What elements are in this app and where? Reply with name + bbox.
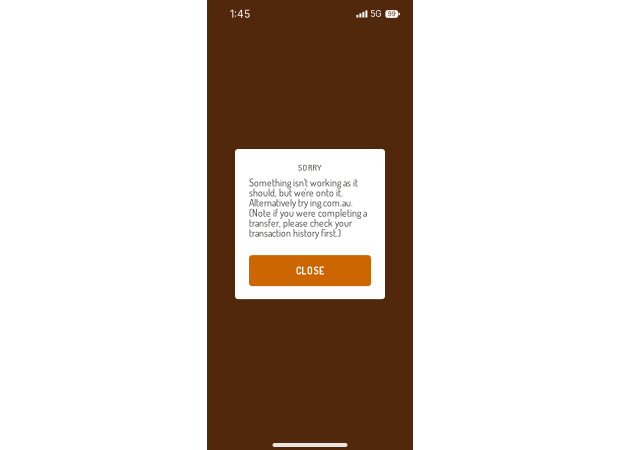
- staticText: CLOSE: [296, 264, 324, 277]
- staticText: Something isn't working as it should, bu…: [249, 176, 367, 239]
- staticText: 5G: [370, 9, 381, 19]
- staticText: 99: [388, 10, 396, 18]
- staticText: 1:45: [230, 8, 250, 20]
- button[interactable]: CLOSE: [249, 255, 371, 286]
- staticText: SORRY: [298, 162, 322, 173]
